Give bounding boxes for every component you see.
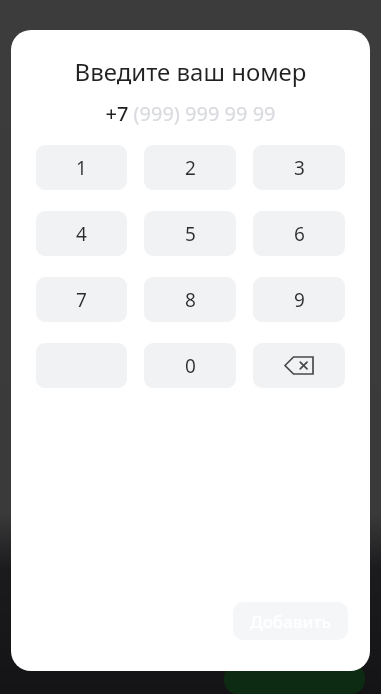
button[interactable]: 2	[144, 145, 236, 190]
staticText: 2	[185, 155, 196, 181]
button[interactable]: Добавить	[233, 602, 348, 640]
staticText: 6	[294, 221, 305, 247]
button[interactable]: 7	[36, 277, 127, 322]
button[interactable]: 3	[253, 145, 345, 190]
staticText: 3	[294, 155, 305, 181]
staticText: 1	[76, 155, 87, 181]
staticText: 5	[185, 221, 196, 247]
button[interactable]: 5	[144, 211, 236, 256]
button[interactable]: 0	[144, 343, 236, 388]
staticText: +7 (999) 999 99 99	[11, 100, 370, 127]
staticText: 9	[294, 287, 305, 313]
button[interactable]: 8	[144, 277, 236, 322]
staticText: Введите ваш номер	[11, 55, 370, 88]
staticText: 7	[76, 287, 87, 313]
button[interactable]: 1	[36, 145, 127, 190]
staticText: 4	[76, 221, 87, 247]
button[interactable]: 4	[36, 211, 127, 256]
staticText: 8	[185, 287, 196, 313]
button[interactable]: 6	[253, 211, 345, 256]
staticText: 0	[185, 353, 196, 379]
button[interactable]: 9	[253, 277, 345, 322]
staticText: Добавить	[250, 610, 331, 633]
button[interactable]: Backspace	[253, 343, 345, 388]
